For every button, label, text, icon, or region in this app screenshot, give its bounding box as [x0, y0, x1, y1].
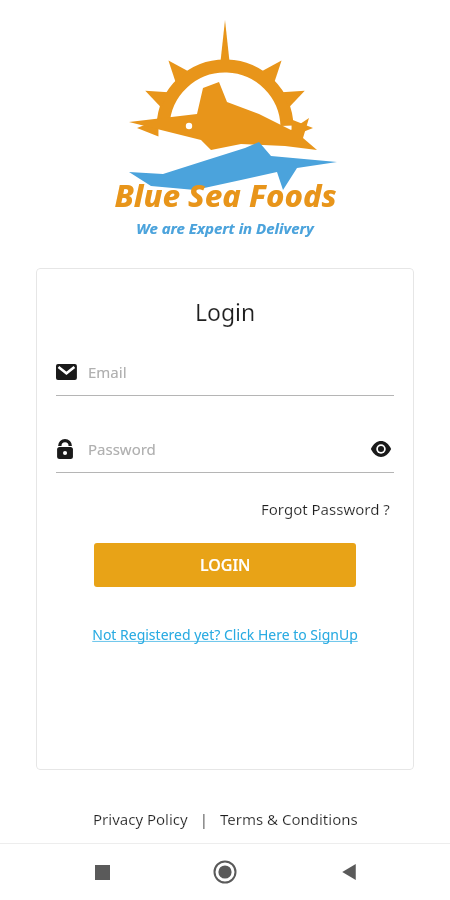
staticText: Email	[88, 362, 127, 382]
staticText: Forgot Password ?	[261, 499, 390, 519]
button[interactable]: Forgot Password ?	[257, 495, 394, 523]
button[interactable]: Back	[327, 850, 371, 894]
staticText: |	[192, 809, 216, 829]
staticText: LOGIN	[200, 554, 251, 576]
button[interactable]: Privacy Policy	[89, 807, 192, 831]
button[interactable]: LOGIN	[94, 543, 356, 587]
staticText: Privacy Policy	[93, 809, 188, 829]
staticText: Blue Sea Foods	[114, 174, 337, 216]
staticText: Login	[195, 296, 256, 327]
staticText: We are Expert in Delivery	[136, 218, 314, 238]
staticText: Terms & Conditions	[220, 809, 358, 829]
button[interactable]: Password	[56, 434, 394, 473]
staticText: Not Registered yet? Click Here to SignUp	[92, 625, 358, 644]
button[interactable]: Not Registered yet? Click Here to SignUp	[66, 625, 384, 644]
button[interactable]: Show password	[368, 436, 394, 462]
button[interactable]: Terms & Conditions	[216, 807, 362, 831]
button[interactable]: Recent apps	[80, 850, 124, 894]
button[interactable]: Email	[56, 357, 394, 396]
button[interactable]: Home	[203, 850, 247, 894]
staticText: Password	[88, 439, 368, 459]
